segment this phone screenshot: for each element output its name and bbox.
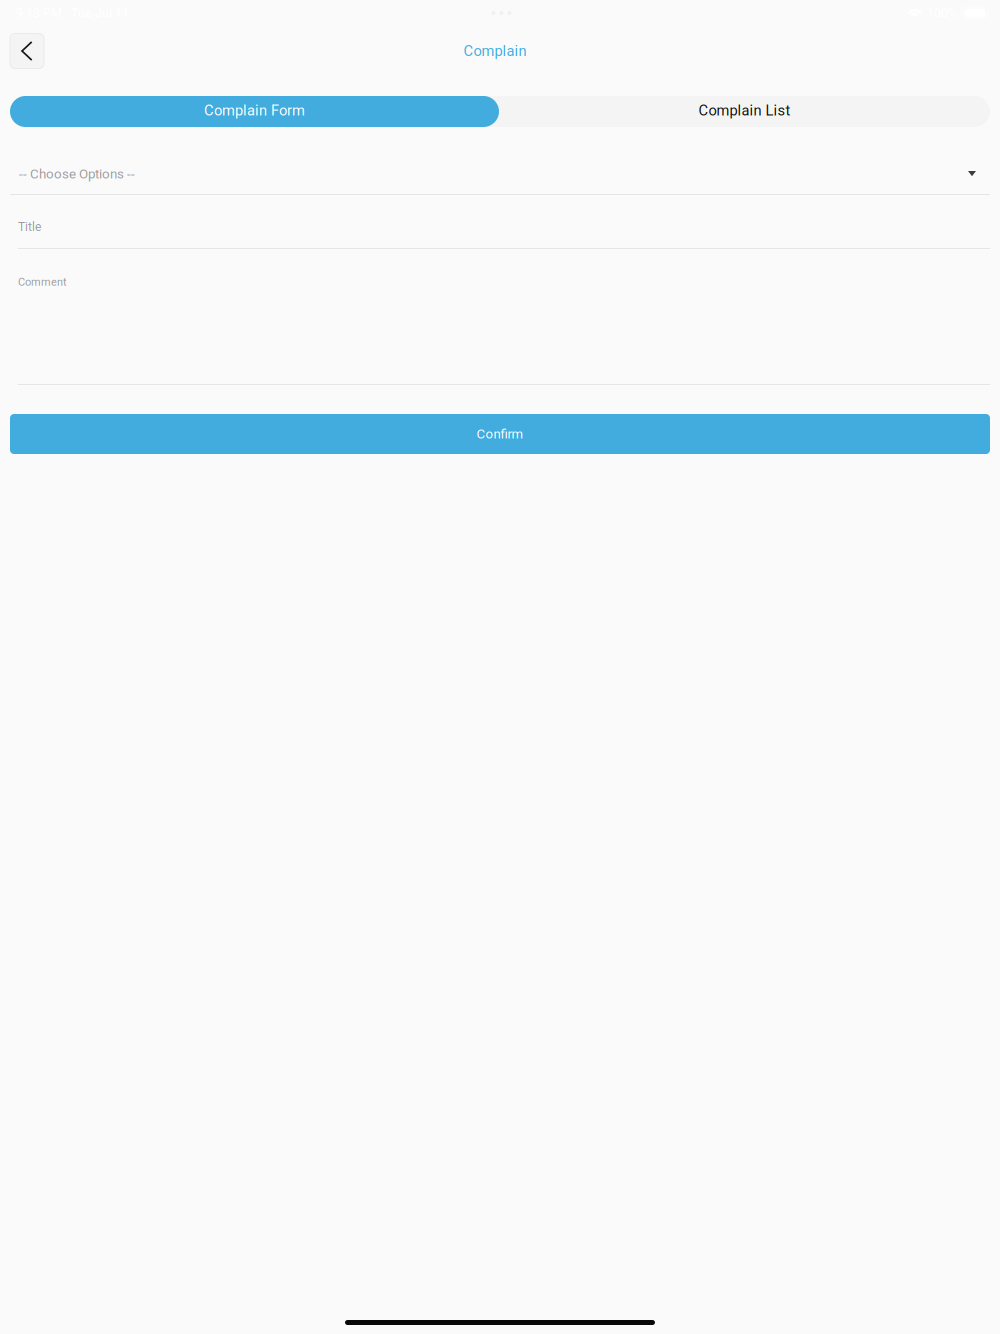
- staticText: Title: [18, 220, 41, 234]
- staticText: Complain Form: [204, 102, 305, 119]
- button[interactable]: -- Choose Options --: [0, 127, 1000, 194]
- staticText: -- Choose Options --: [19, 166, 135, 182]
- staticText: Complain: [463, 42, 526, 60]
- staticText: Comment: [18, 276, 67, 288]
- button[interactable]: Complain List: [499, 96, 990, 127]
- staticText: Complain List: [698, 102, 790, 119]
- button[interactable]: Confirm: [10, 414, 990, 454]
- button[interactable]: Back: [10, 33, 44, 68]
- staticText: Confirm: [476, 426, 523, 442]
- button[interactable]: Complain Form: [10, 96, 499, 127]
